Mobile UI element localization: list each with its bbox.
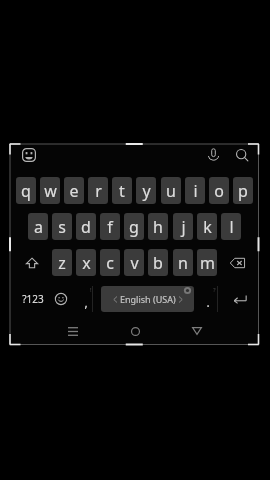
- staticText: e: [69, 180, 79, 202]
- staticText: o: [214, 180, 224, 202]
- button[interactable]: d: [76, 213, 96, 240]
- button[interactable]: l: [221, 213, 241, 240]
- staticText: .: [206, 294, 210, 310]
- button[interactable]: o: [209, 177, 229, 204]
- button[interactable]: c: [100, 249, 120, 276]
- staticText: t: [119, 180, 125, 202]
- staticText: p: [238, 180, 248, 202]
- button[interactable]: z: [52, 249, 72, 276]
- staticText: !: [90, 286, 92, 292]
- button[interactable]: t: [112, 177, 132, 204]
- button[interactable]: m: [197, 249, 217, 276]
- button[interactable]: h: [148, 213, 168, 240]
- staticText: ?123: [22, 292, 44, 306]
- button[interactable]: s: [52, 213, 72, 240]
- button[interactable]: k: [197, 213, 217, 240]
- staticText: k: [203, 216, 212, 238]
- button[interactable]: ?123: [21, 286, 44, 312]
- button[interactable]: a: [28, 213, 48, 240]
- staticText: d: [81, 216, 91, 238]
- staticText: ?: [213, 286, 216, 292]
- button[interactable]: y: [136, 177, 156, 204]
- staticText: z: [58, 252, 66, 274]
- button[interactable]: Emoji: [55, 293, 67, 305]
- button[interactable]: q: [16, 177, 36, 204]
- button[interactable]: v: [124, 249, 144, 276]
- button[interactable]: x: [76, 249, 96, 276]
- staticText: x: [82, 252, 91, 274]
- staticText: y: [142, 180, 151, 202]
- button[interactable]: ,: [78, 289, 94, 315]
- button[interactable]: r: [88, 177, 108, 204]
- button[interactable]: e: [64, 177, 84, 204]
- button[interactable]: i: [185, 177, 205, 204]
- staticText: r: [95, 180, 102, 202]
- staticText: l: [229, 216, 234, 238]
- button[interactable]: Recents: [59, 324, 87, 338]
- button[interactable]: w: [40, 177, 60, 204]
- staticText: English (USA): [120, 293, 176, 305]
- staticText: ,: [84, 294, 88, 310]
- staticText: n: [178, 252, 188, 274]
- button[interactable]: f: [100, 213, 120, 240]
- staticText: a: [34, 216, 43, 238]
- button[interactable]: English (USA): [101, 286, 194, 312]
- button[interactable]: g: [124, 213, 144, 240]
- button[interactable]: Search: [235, 148, 249, 162]
- staticText: j: [181, 216, 186, 238]
- button[interactable]: u: [161, 177, 181, 204]
- staticText: q: [21, 180, 31, 202]
- staticText: u: [166, 180, 176, 202]
- staticText: c: [106, 252, 114, 274]
- button[interactable]: Backspace: [221, 249, 253, 276]
- staticText: h: [153, 216, 163, 238]
- button[interactable]: p: [233, 177, 253, 204]
- button[interactable]: .: [200, 289, 216, 315]
- staticText: i: [193, 180, 198, 202]
- staticText: f: [107, 216, 113, 238]
- staticText: v: [130, 252, 139, 274]
- button[interactable]: Voice input: [206, 147, 221, 162]
- button[interactable]: Enter: [226, 286, 254, 312]
- button[interactable]: Home: [121, 324, 149, 338]
- button[interactable]: Stickers: [22, 148, 36, 162]
- staticText: w: [44, 180, 57, 202]
- button[interactable]: Back: [183, 324, 211, 338]
- button[interactable]: Shift: [16, 249, 48, 276]
- staticText: b: [153, 252, 163, 274]
- button[interactable]: j: [173, 213, 193, 240]
- button[interactable]: n: [173, 249, 193, 276]
- staticText: g: [129, 216, 139, 238]
- staticText: m: [200, 252, 215, 274]
- button[interactable]: b: [148, 249, 168, 276]
- staticText: s: [58, 216, 66, 238]
